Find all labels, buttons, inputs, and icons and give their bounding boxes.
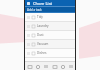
- button[interactable]: Reorder: [25, 31, 75, 39]
- staticText: Tidy: [37, 15, 43, 19]
- button[interactable]: Tool 5: [67, 63, 74, 70]
- button[interactable]: Tool 0: [26, 63, 33, 70]
- staticText: Dishes: [37, 51, 47, 55]
- staticText: Chore List: [33, 1, 53, 6]
- button[interactable]: Tool 2: [42, 63, 49, 70]
- button[interactable]: Reorder: [25, 49, 75, 57]
- button[interactable]: Add a task: [25, 7, 75, 12]
- other: Toggle Dishes: [32, 52, 35, 55]
- staticText: Dust: [37, 33, 44, 37]
- button[interactable]: Reorder: [25, 13, 75, 21]
- other: Toggle Dust: [32, 34, 35, 37]
- button[interactable]: Reorder: [25, 40, 75, 48]
- other: Toggle Tidy: [32, 16, 35, 19]
- staticText: Vacuum: [37, 42, 49, 46]
- button[interactable]: Tool 3: [51, 63, 58, 70]
- button[interactable]: Menu: [27, 2, 30, 5]
- staticText: Add a task: [27, 8, 42, 12]
- button[interactable]: Tool 4: [59, 63, 66, 70]
- button[interactable]: Menu: [25, 0, 75, 6]
- staticText: Laundry: [37, 24, 49, 28]
- other: Toggle Laundry: [32, 25, 35, 28]
- button[interactable]: Reorder: [25, 22, 75, 30]
- other: Toggle Vacuum: [32, 43, 35, 46]
- button[interactable]: Tool 1: [34, 63, 41, 70]
